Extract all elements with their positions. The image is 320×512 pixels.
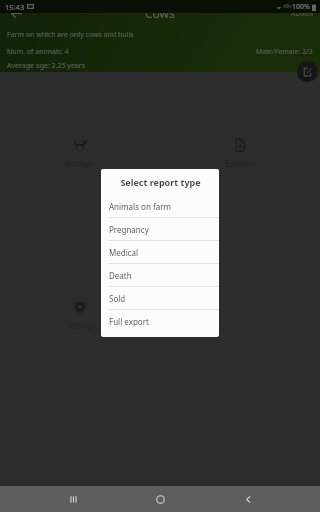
- staticText: 15:43: [5, 2, 25, 12]
- button[interactable]: Animals on farm: [101, 195, 219, 218]
- staticText: Animals on farm: [109, 201, 171, 212]
- staticText: ADMIN: [291, 9, 314, 18]
- staticText: Death: [109, 270, 132, 281]
- staticText: Num. of animals: 4: [7, 47, 69, 57]
- button[interactable]: Home: [145, 486, 175, 512]
- button[interactable]: Reports: [215, 138, 265, 169]
- staticText: Select report type: [120, 176, 201, 188]
- button[interactable]: Death: [101, 264, 219, 287]
- button[interactable]: Sold: [101, 287, 219, 310]
- staticText: Full export: [109, 316, 149, 327]
- staticText: Farm on which are only cows and bulls: [7, 30, 134, 40]
- staticText: Cows: [145, 5, 175, 21]
- button[interactable]: Edit farm: [297, 61, 318, 82]
- button[interactable]: Back: [4, 1, 28, 25]
- button[interactable]: Full export: [101, 310, 219, 333]
- staticText: Male/Female: 2/2: [256, 47, 313, 57]
- button[interactable]: Recent apps: [58, 486, 88, 512]
- staticText: Pregnancy: [109, 224, 149, 235]
- button[interactable]: Settings: [55, 300, 105, 331]
- staticText: Medical: [109, 247, 139, 258]
- button[interactable]: Back: [233, 486, 263, 512]
- staticText: Sold: [109, 293, 126, 304]
- button[interactable]: ADMIN: [291, 9, 314, 18]
- button[interactable]: Pregnancy: [101, 218, 219, 241]
- button[interactable]: Medical: [101, 241, 219, 264]
- staticText: 100%: [292, 2, 310, 12]
- staticText: Average age: 2.25 years: [7, 61, 86, 71]
